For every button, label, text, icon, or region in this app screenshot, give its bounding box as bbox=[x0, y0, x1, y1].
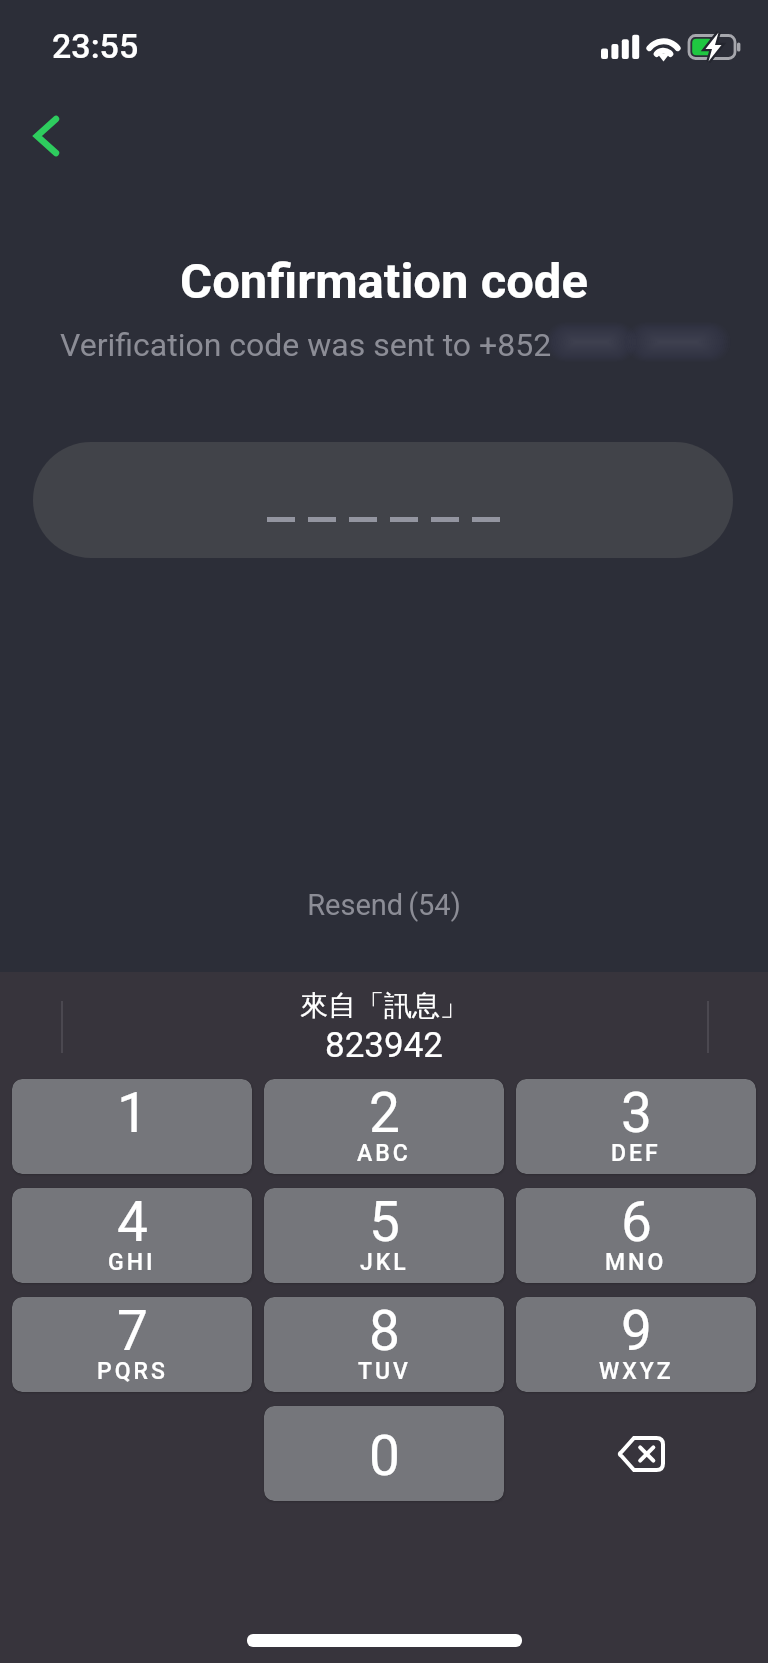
staticText: 8 bbox=[369, 1299, 400, 1363]
button[interactable]: 7 bbox=[12, 1297, 252, 1392]
button[interactable]: 3 bbox=[516, 1079, 756, 1174]
staticText: Verification code was sent to +852 bbox=[60, 326, 552, 364]
staticText: 7 bbox=[117, 1299, 148, 1363]
staticText: 4 bbox=[117, 1190, 148, 1254]
staticText: PQRS bbox=[97, 1358, 168, 1385]
button[interactable]: 0 bbox=[264, 1406, 504, 1501]
staticText: ABC bbox=[357, 1140, 411, 1167]
staticText: DEF bbox=[611, 1140, 661, 1167]
button[interactable]: 2 bbox=[264, 1079, 504, 1174]
staticText: 來自「訊息」 bbox=[300, 988, 468, 1023]
button[interactable]: Back bbox=[10, 101, 78, 169]
staticText: 2 bbox=[369, 1081, 400, 1145]
button[interactable]: Delete bbox=[516, 1406, 756, 1501]
staticText: 823942 bbox=[325, 1025, 444, 1066]
staticText: 23:55 bbox=[52, 26, 139, 66]
button[interactable]: 9 bbox=[516, 1297, 756, 1392]
staticText: Resend (54) bbox=[307, 888, 461, 922]
button[interactable]: 4 bbox=[12, 1188, 252, 1283]
staticText: WXYZ bbox=[599, 1358, 674, 1385]
staticText: 3 bbox=[621, 1081, 652, 1145]
staticText: 1 bbox=[117, 1081, 148, 1145]
button[interactable]: 8 bbox=[264, 1297, 504, 1392]
staticText: 9 bbox=[621, 1299, 652, 1363]
staticText: 5 bbox=[369, 1190, 400, 1254]
button[interactable]: 1 bbox=[12, 1079, 252, 1174]
staticText: TUV bbox=[358, 1358, 411, 1385]
staticText: 6 bbox=[621, 1190, 652, 1254]
button[interactable] bbox=[33, 442, 733, 558]
button[interactable]: Resend (54) bbox=[291, 876, 477, 934]
button[interactable]: 5 bbox=[264, 1188, 504, 1283]
button[interactable]: 6 bbox=[516, 1188, 756, 1283]
staticText: GHI bbox=[108, 1249, 156, 1276]
staticText: Confirmation code bbox=[0, 253, 768, 310]
staticText: JKL bbox=[360, 1249, 409, 1276]
staticText: 0 bbox=[369, 1424, 400, 1488]
staticText: MNO bbox=[605, 1249, 667, 1276]
